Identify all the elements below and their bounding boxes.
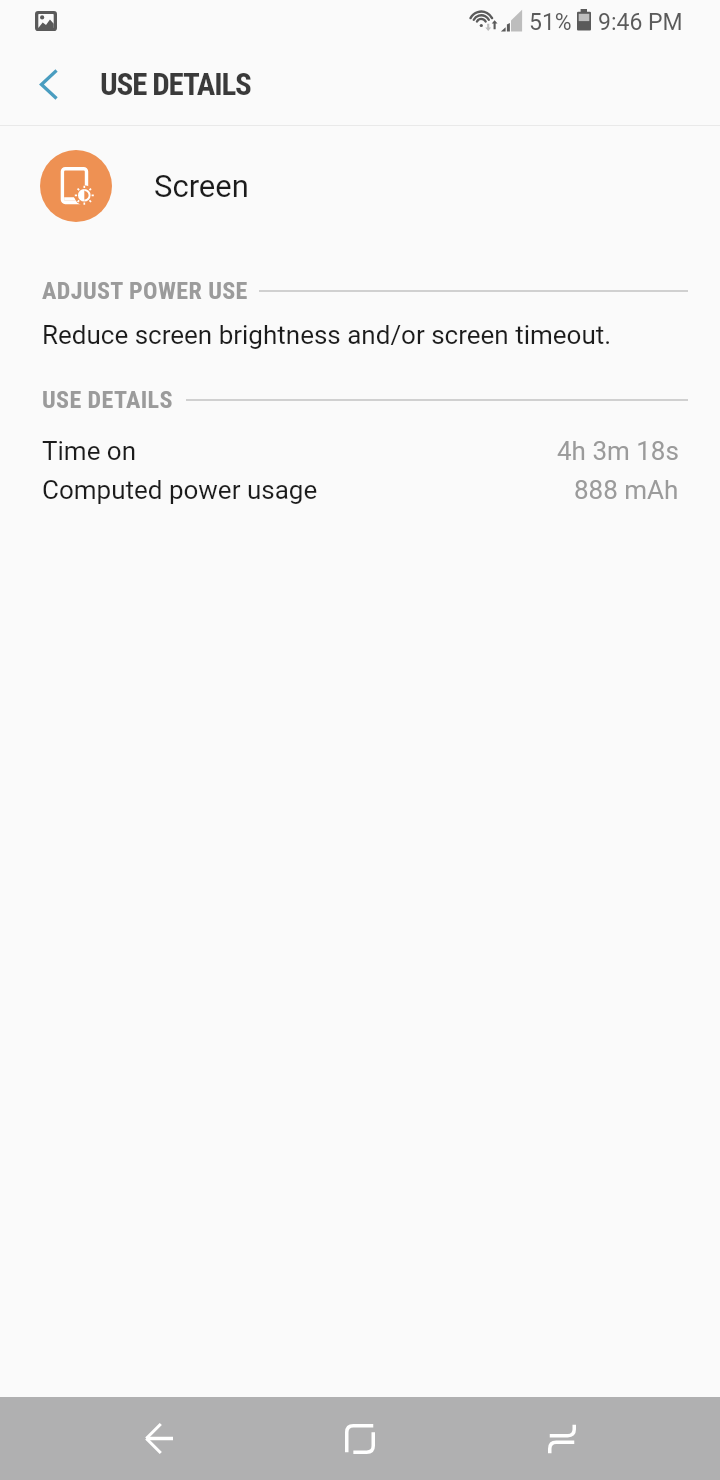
- button[interactable]: Home: [310, 1397, 410, 1480]
- staticText: 51%: [529, 9, 572, 36]
- staticText: 888 mAh: [574, 475, 679, 505]
- staticText: USE DETAILS: [100, 66, 251, 102]
- staticText: 4h 3m 18s: [557, 436, 679, 466]
- staticText: ADJUST POWER USE: [42, 277, 248, 305]
- button[interactable]: Recent apps: [512, 1397, 612, 1480]
- staticText: Reduce screen brightness and/or screen t…: [42, 320, 612, 350]
- button[interactable]: Computed power usage: [0, 470, 720, 509]
- button[interactable]: Navigate up: [8, 52, 88, 116]
- staticText: USE DETAILS: [42, 386, 173, 414]
- staticText: Screen: [154, 168, 249, 204]
- staticText: 9:46 PM: [598, 9, 683, 36]
- staticText: Computed power usage: [42, 475, 318, 505]
- button[interactable]: Time on: [0, 431, 720, 470]
- button[interactable]: Back: [109, 1397, 209, 1480]
- staticText: Time on: [42, 436, 137, 466]
